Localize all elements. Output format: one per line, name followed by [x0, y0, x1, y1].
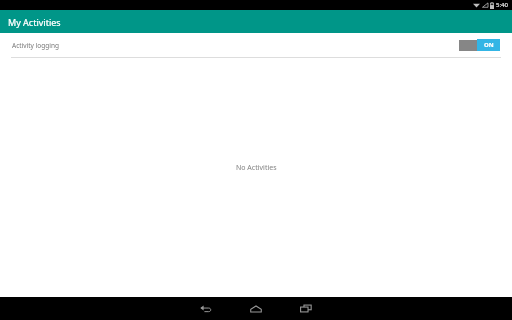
button[interactable]: Activity logging toggle, on	[459, 39, 500, 51]
button[interactable]: Home	[231, 297, 281, 320]
button[interactable]: Back	[181, 297, 231, 320]
button[interactable]: Recent apps	[281, 297, 331, 320]
staticText: ON	[484, 41, 494, 49]
button[interactable]: Activity logging	[0, 33, 512, 57]
staticText: Activity logging	[12, 41, 459, 50]
staticText: My Activities	[8, 16, 61, 28]
staticText: 5:40	[496, 1, 508, 9]
staticText: No Activities	[236, 163, 277, 173]
